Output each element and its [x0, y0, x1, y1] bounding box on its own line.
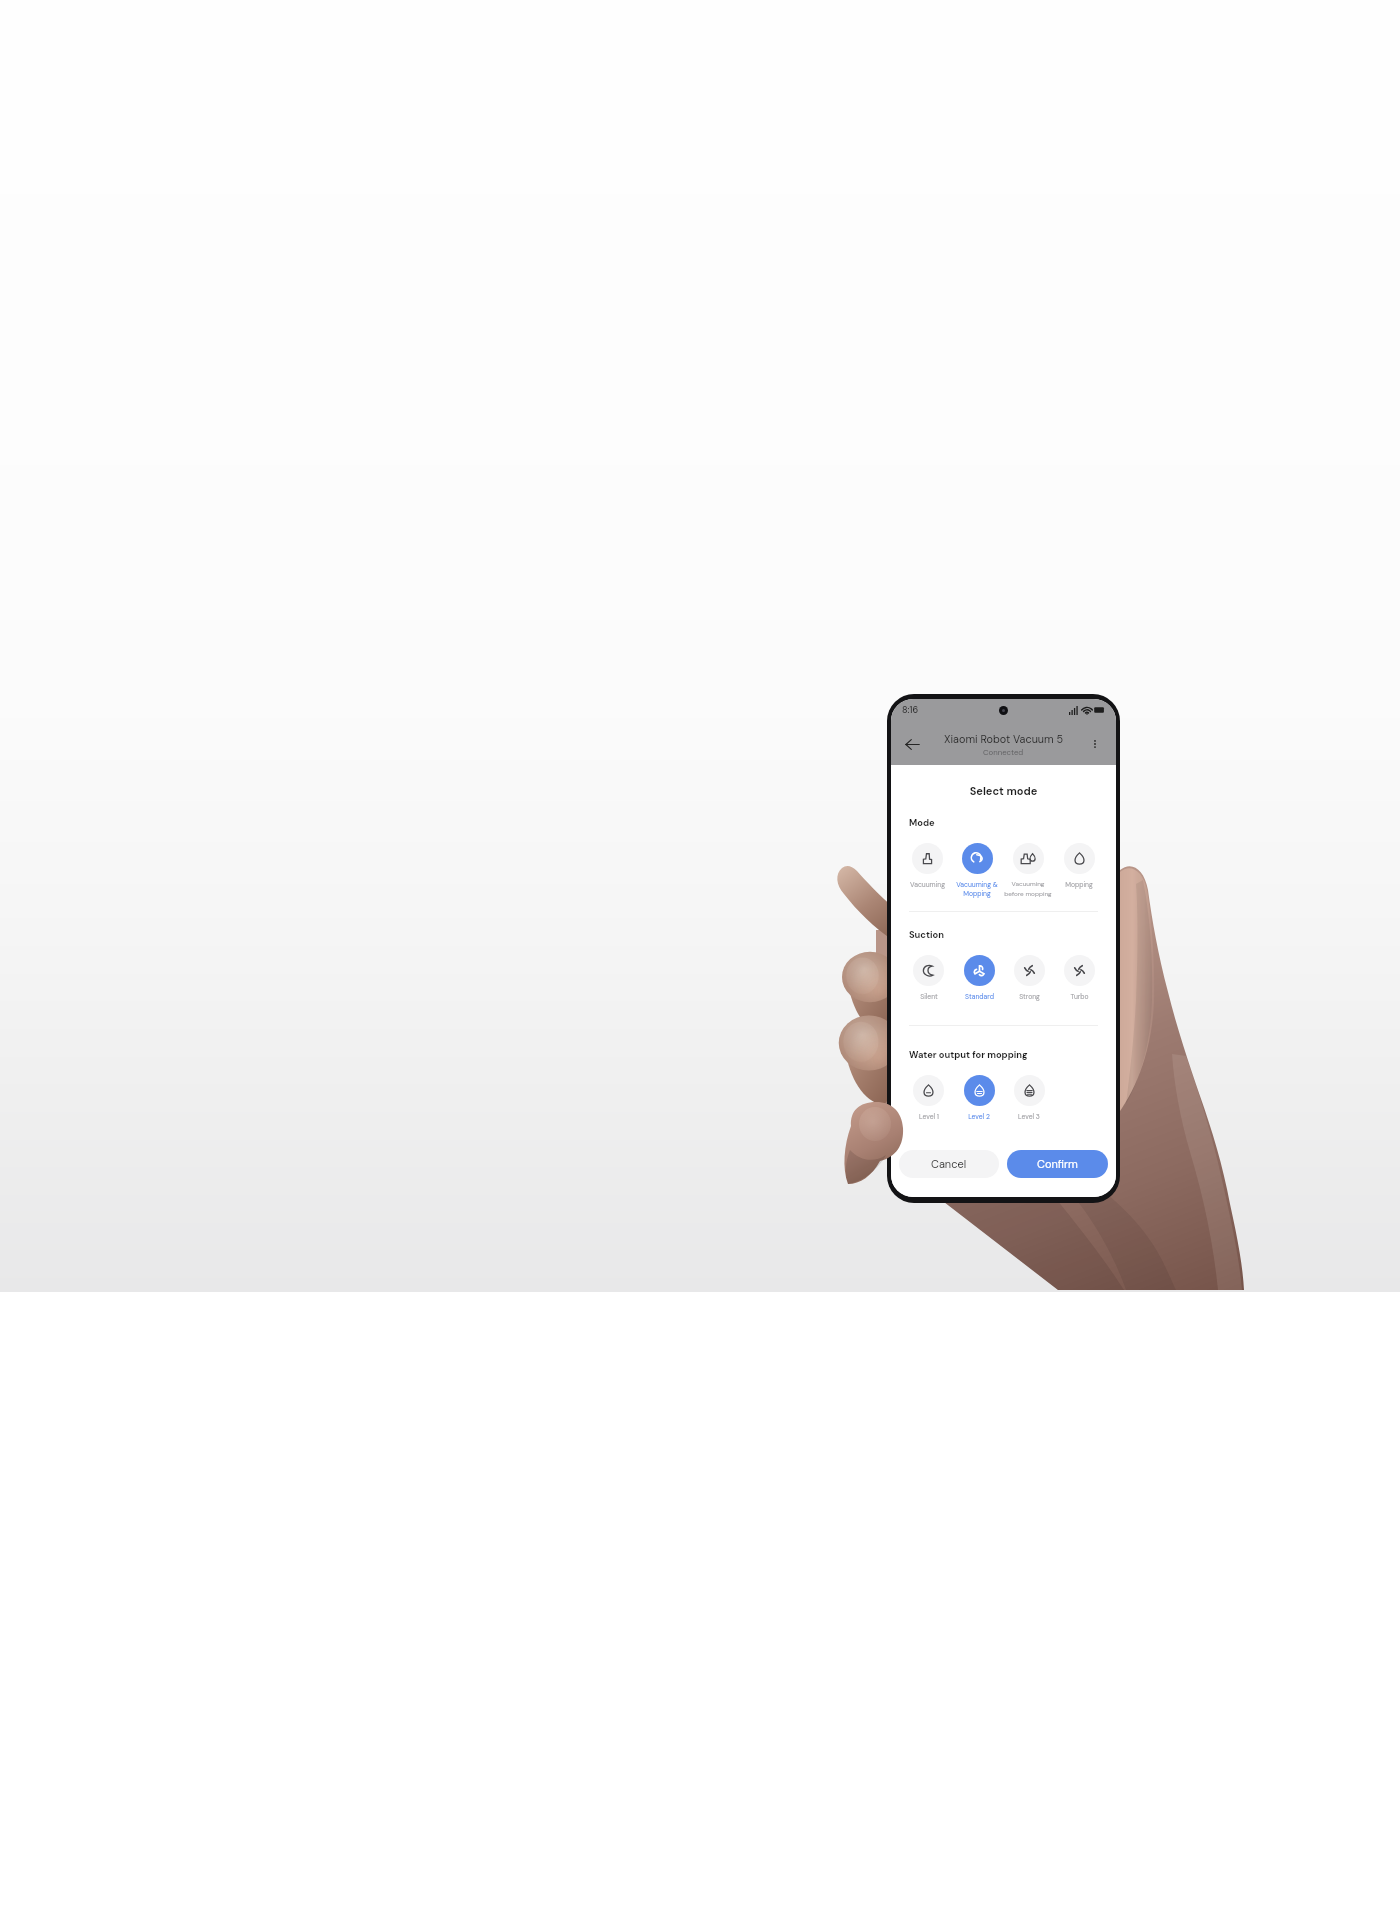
staticText: Suction	[909, 929, 944, 941]
staticText: Silent	[920, 992, 938, 1001]
staticText: Select mode	[891, 784, 1116, 798]
staticText: Mode	[909, 817, 935, 829]
staticText: Strong	[1019, 992, 1040, 1001]
staticText: Level 1	[919, 1112, 939, 1121]
staticText: Mopping	[1065, 880, 1093, 889]
button[interactable]: Vacuuming before mopping	[1002, 843, 1054, 898]
button[interactable]: Level 1	[903, 1075, 954, 1121]
button[interactable]: Vacuuming & Mopping	[952, 843, 1002, 898]
button[interactable]: Vacuuming	[903, 843, 952, 889]
button[interactable]: Standard	[954, 955, 1004, 1001]
staticText: Turbo	[1070, 992, 1089, 1001]
button[interactable]: More options	[1083, 732, 1107, 756]
staticText: Connected	[983, 747, 1024, 757]
button[interactable]: Cancel	[899, 1150, 999, 1178]
staticText: Water output for mopping	[909, 1049, 1028, 1061]
staticText: Level 2	[968, 1112, 990, 1121]
staticText: Vacuuming & Mopping	[956, 880, 998, 898]
button[interactable]: Level 3	[1004, 1075, 1054, 1121]
staticText: Confirm	[1037, 1157, 1078, 1171]
button[interactable]: Level 2	[954, 1075, 1004, 1121]
staticText: Level 3	[1018, 1112, 1040, 1121]
button[interactable]: Silent	[903, 955, 954, 1001]
staticText: 8:16	[902, 704, 919, 716]
button[interactable]: Mopping	[1054, 843, 1104, 889]
staticText: Xiaomi Robot Vacuum 5	[944, 732, 1064, 746]
staticText: Standard	[965, 992, 994, 1001]
button[interactable]: Turbo	[1054, 955, 1104, 1001]
button[interactable]: Back	[900, 732, 924, 756]
button[interactable]: Strong	[1004, 955, 1054, 1001]
staticText: Vacuuming before mopping	[1004, 880, 1052, 898]
button[interactable]: Confirm	[1007, 1150, 1108, 1178]
staticText: Vacuuming	[910, 880, 945, 889]
staticText: Cancel	[931, 1157, 967, 1171]
